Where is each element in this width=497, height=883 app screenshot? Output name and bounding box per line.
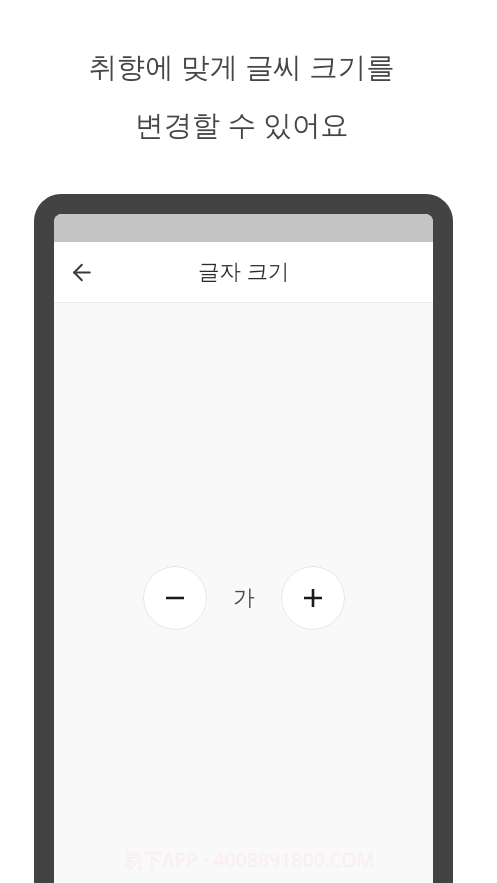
button[interactable]: Increase font size	[281, 566, 345, 630]
staticText: 취향에 맞게 글씨 크기를	[88, 47, 395, 86]
staticText: 글자 크기	[198, 256, 290, 285]
staticText: 가	[233, 584, 255, 612]
button[interactable]: Decrease font size	[143, 566, 207, 630]
button[interactable]: Back	[63, 254, 99, 290]
staticText: 변경할 수 있어요	[135, 105, 349, 144]
staticText: 易下APP · 4008891800.COM	[123, 846, 375, 873]
